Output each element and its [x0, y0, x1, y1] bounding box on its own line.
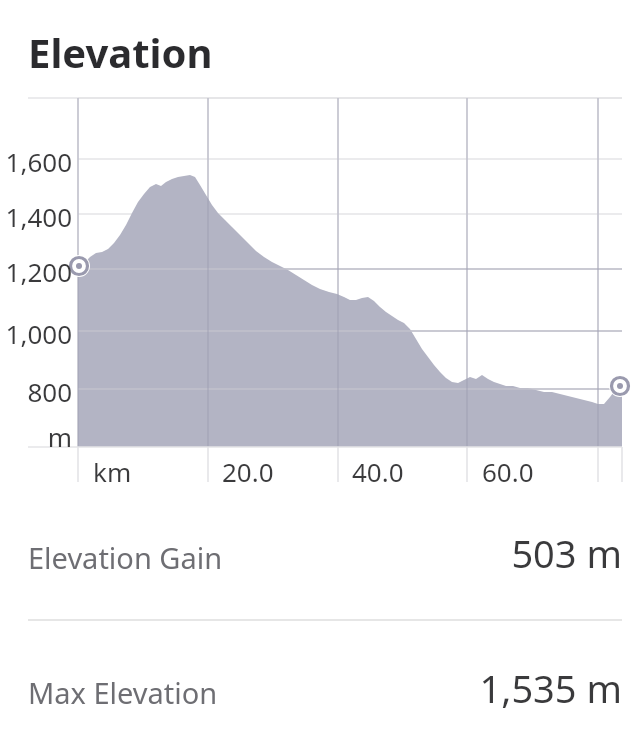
button[interactable]: Max Elevation	[0, 622, 640, 753]
staticText: 1,535 m	[322, 662, 622, 714]
staticText: 1,000	[0, 316, 72, 351]
staticText: m	[0, 419, 72, 454]
staticText: Elevation	[28, 25, 428, 79]
staticText: Elevation Gain	[28, 538, 348, 577]
staticText: 1,200	[0, 254, 72, 289]
staticText: 60.0	[482, 454, 572, 489]
staticText: 40.0	[352, 454, 442, 489]
staticText: 503 m	[322, 527, 622, 579]
button[interactable]: Elevation Gain	[0, 500, 640, 620]
staticText: 1,400	[0, 199, 72, 234]
staticText: km	[93, 454, 173, 489]
staticText: 800	[0, 374, 72, 409]
staticText: 1,600	[0, 144, 72, 179]
staticText: 20.0	[222, 454, 312, 489]
staticText: Max Elevation	[28, 673, 348, 712]
